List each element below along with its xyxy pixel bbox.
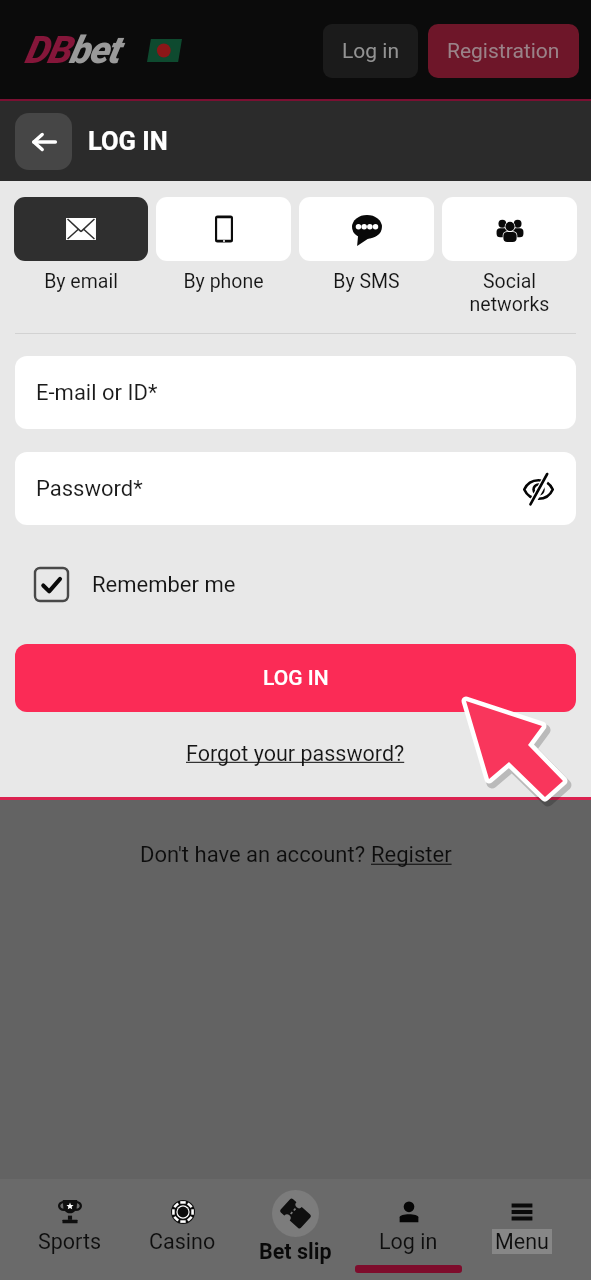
staticText: By SMS (299, 270, 434, 293)
button[interactable]: Registration (428, 24, 579, 78)
button[interactable]: Password* (15, 452, 576, 525)
button[interactable]: LOG IN (15, 644, 576, 712)
button[interactable]: Sports (13, 1179, 126, 1280)
button[interactable]: Log in (352, 1179, 465, 1280)
button[interactable]: Remember me (35, 568, 576, 601)
button[interactable]: Back (15, 113, 72, 170)
staticText: Don't have an account? (140, 842, 371, 868)
staticText: E-mail or ID* (36, 380, 158, 406)
staticText: DBbet (24, 28, 119, 73)
staticText: Password* (36, 476, 143, 502)
button[interactable]: Casino (126, 1179, 239, 1280)
staticText: Registration (447, 39, 560, 64)
staticText: By email (14, 270, 148, 293)
staticText: LOG IN (263, 666, 329, 691)
button[interactable]: By SMS (299, 197, 434, 293)
staticText: Menu (495, 1229, 549, 1254)
button[interactable]: By email (14, 197, 148, 293)
staticText: By phone (156, 270, 291, 293)
staticText: Sports (38, 1229, 102, 1254)
button[interactable]: By phone (156, 197, 291, 293)
staticText: Social networks (442, 270, 577, 316)
staticText: Bet slip (259, 1239, 332, 1264)
button[interactable]: Show password (516, 467, 560, 511)
button[interactable]: Register (371, 842, 452, 868)
staticText: Log in (342, 39, 399, 64)
button[interactable]: Social networks (442, 197, 577, 316)
staticText: Log in (379, 1229, 438, 1254)
button[interactable]: Bet slip (239, 1179, 352, 1280)
button[interactable]: Menu (465, 1179, 578, 1280)
staticText: LOG IN (88, 126, 168, 156)
staticText: Forgot your password? (186, 741, 405, 766)
staticText: Casino (149, 1229, 216, 1254)
staticText: Register (371, 842, 452, 868)
button[interactable]: E-mail or ID* (15, 356, 576, 429)
button[interactable]: Log in (323, 24, 418, 78)
staticText: Remember me (92, 572, 236, 598)
button[interactable]: Forgot your password? (186, 741, 405, 766)
